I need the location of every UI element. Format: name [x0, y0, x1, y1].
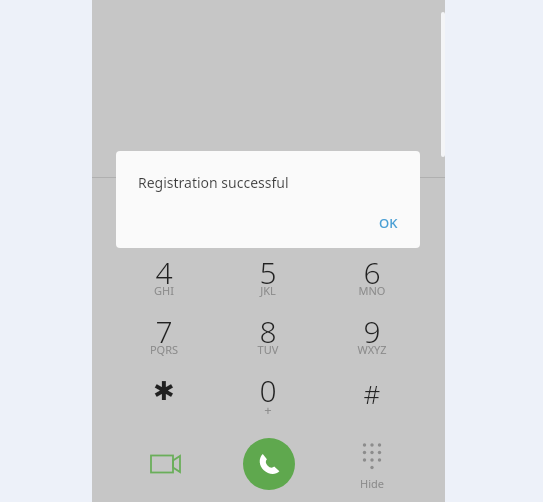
staticText: Hide: [342, 476, 402, 492]
staticText: 5: [220, 252, 316, 290]
button[interactable]: 4: [116, 252, 212, 302]
staticText: 9: [324, 311, 420, 349]
staticText: 0: [220, 370, 316, 408]
button[interactable]: 6: [324, 252, 420, 302]
button[interactable]: 9: [324, 311, 420, 361]
button[interactable]: Call: [243, 438, 295, 490]
staticText: ✱: [116, 376, 212, 414]
staticText: +: [220, 401, 316, 419]
button[interactable]: 8: [220, 311, 316, 361]
staticText: #: [324, 376, 420, 414]
button[interactable]: Hide keypad: [342, 434, 402, 498]
staticText: 4: [116, 252, 212, 290]
staticText: GHI: [116, 283, 212, 301]
staticText: JKL: [220, 283, 316, 301]
button[interactable]: ✱: [116, 372, 212, 422]
staticText: TUV: [220, 342, 316, 360]
staticText: 8: [220, 311, 316, 349]
staticText: 7: [116, 311, 212, 349]
button[interactable]: 0: [220, 370, 316, 420]
button[interactable]: OK: [366, 207, 410, 239]
button[interactable]: 5: [220, 252, 316, 302]
staticText: 6: [324, 252, 420, 290]
button[interactable]: Video call: [138, 438, 190, 490]
staticText: MNO: [324, 283, 420, 301]
staticText: PQRS: [116, 342, 212, 360]
staticText: OK: [379, 214, 398, 232]
button[interactable]: #: [324, 372, 420, 422]
button[interactable]: 7: [116, 311, 212, 361]
staticText: WXYZ: [324, 342, 420, 360]
staticText: Registration successful: [138, 173, 289, 192]
